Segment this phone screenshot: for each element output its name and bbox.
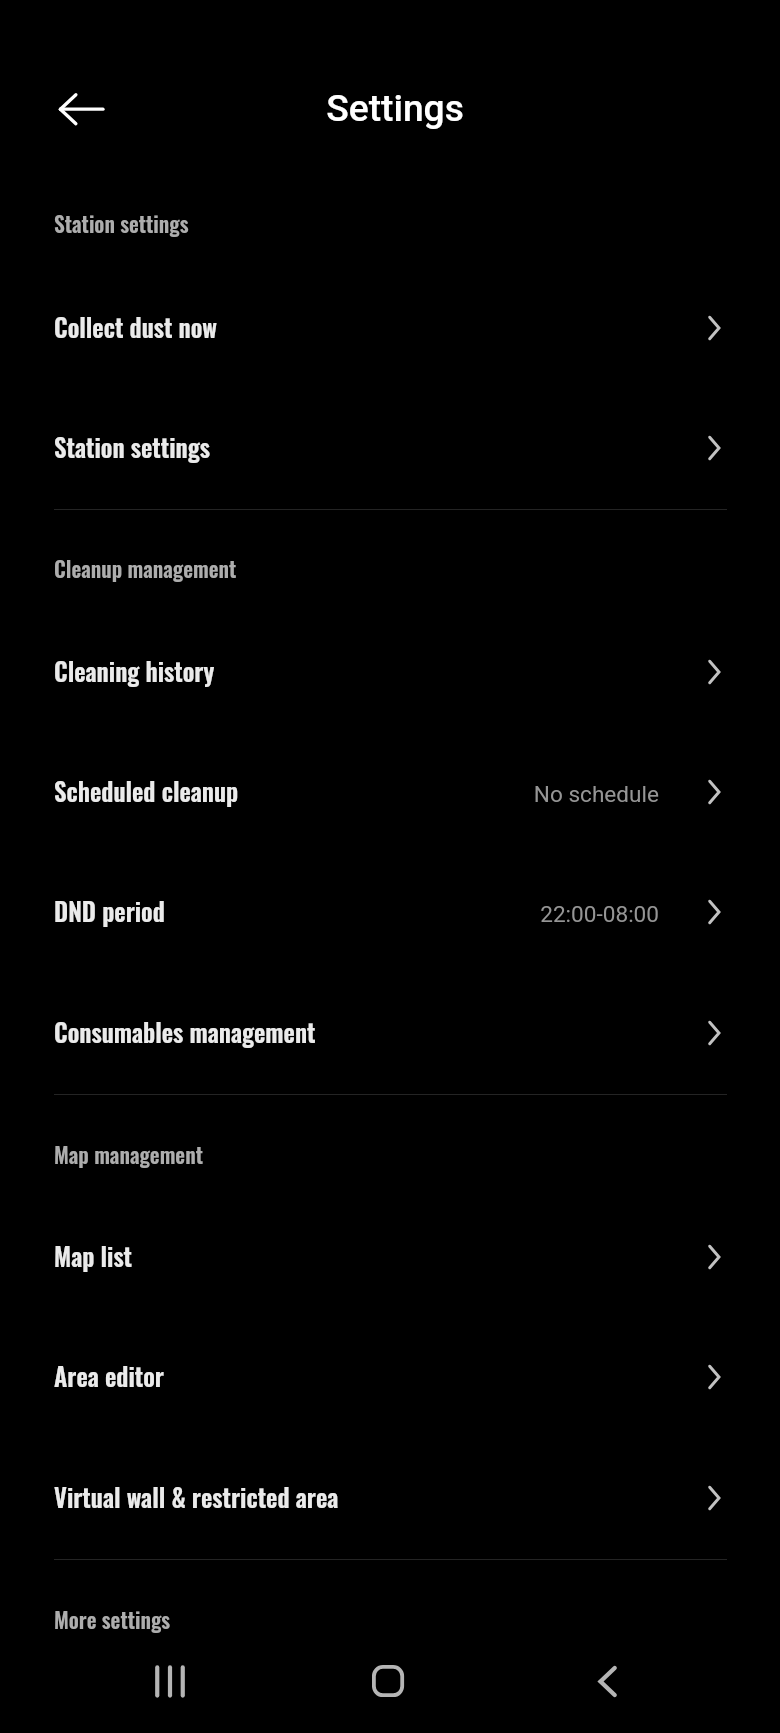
staticText: Virtual wall & restricted area [54, 1460, 339, 1519]
button[interactable]: Consumables management [0, 969, 780, 1089]
button[interactable]: Map list [0, 1193, 780, 1313]
button[interactable]: Scheduled cleanup [0, 728, 780, 848]
staticText: More settings [54, 1588, 171, 1639]
staticText: DND period [54, 874, 165, 933]
button[interactable]: Virtual wall & restricted area [0, 1434, 780, 1554]
staticText: Station settings [54, 410, 210, 469]
staticText: Area editor [54, 1339, 164, 1398]
button[interactable]: Home [348, 1641, 428, 1721]
button[interactable]: Recent apps [130, 1641, 210, 1721]
staticText: Collect dust now [54, 290, 218, 349]
staticText: Scheduled cleanup [54, 754, 239, 813]
button[interactable]: Back [567, 1641, 647, 1721]
button[interactable]: DND period [0, 848, 780, 968]
staticText: 22:00-08:00 [0, 879, 659, 933]
staticText: Settings [95, 50, 695, 139]
staticText: Cleanup management [54, 537, 237, 588]
button[interactable]: Area editor [0, 1313, 780, 1433]
button[interactable]: Navigate up [22, 67, 106, 151]
staticText: Station settings [54, 192, 189, 243]
staticText: Map list [54, 1219, 133, 1278]
staticText: Cleaning history [54, 634, 215, 693]
button[interactable]: Cleaning history [0, 608, 780, 728]
button[interactable]: Collect dust now [0, 264, 780, 384]
staticText: No schedule [0, 759, 659, 813]
button[interactable]: Station settings [0, 384, 780, 504]
staticText: Consumables management [54, 995, 316, 1054]
staticText: Map management [54, 1123, 203, 1174]
